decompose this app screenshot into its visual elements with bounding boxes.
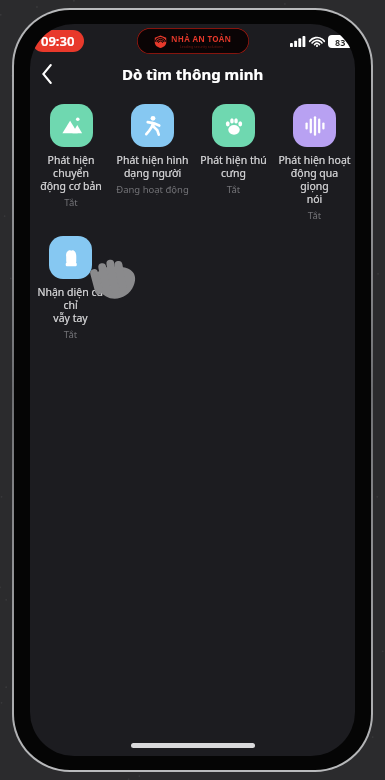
staticText: Nhận diện cử chỉ vẫy tay — [32, 285, 109, 325]
staticText: Tắt — [32, 196, 110, 209]
staticText: Tắt — [195, 183, 272, 196]
staticText: Leading security solutions — [180, 44, 223, 49]
staticText: Tắt — [32, 328, 109, 341]
staticText: Phát hiện thú cưng — [195, 153, 272, 180]
button[interactable]: Phát hiện hoạt động qua giọng nói — [274, 100, 355, 226]
staticText: Phát hiện hoạt động qua giọng nói — [276, 153, 353, 206]
staticText: Phát hiện hình dạng người — [114, 153, 191, 180]
staticText: 83 — [335, 36, 346, 48]
staticText: Đang hoạt động — [114, 183, 191, 196]
staticText: Dò tìm thông minh — [122, 64, 264, 84]
button[interactable]: Phát hiện hình dạng người — [112, 100, 193, 200]
staticText: Tắt — [276, 209, 353, 222]
staticText: 09:30 — [41, 32, 75, 50]
other: Nha An Toan logo — [137, 28, 249, 54]
button[interactable]: Phát hiện thú cưng — [193, 100, 274, 200]
button[interactable]: Back — [30, 58, 64, 90]
staticText: Phát hiện chuyển động cơ bản — [32, 153, 110, 193]
button[interactable]: Phát hiện chuyển động cơ bản — [30, 100, 112, 213]
staticText: NHÀ AN TOÀN — [171, 33, 232, 44]
button[interactable]: Nhận diện cử chỉ vẫy tay — [30, 232, 111, 345]
